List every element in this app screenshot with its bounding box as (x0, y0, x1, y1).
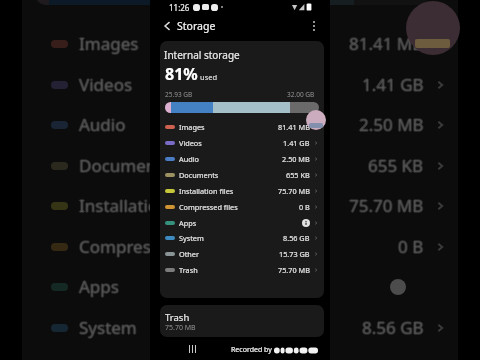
staticText: Installation files (79, 194, 206, 217)
staticText: Documents (79, 154, 171, 177)
staticText: Audio (79, 112, 126, 135)
button[interactable]: More options (307, 19, 321, 33)
staticText: 75.70 MB (278, 265, 310, 275)
staticText: 0 B (398, 235, 424, 258)
staticText: 15.73 GB (279, 249, 310, 259)
staticText: Documents (78, 154, 170, 177)
staticText: Documents (179, 170, 219, 180)
staticText: Compressed files (179, 202, 238, 212)
button[interactable]: System (160, 230, 324, 246)
staticText: Trash (165, 311, 190, 324)
button[interactable]: Back (159, 18, 174, 33)
staticText: Installation files (79, 195, 206, 218)
staticText: Images (79, 32, 139, 55)
staticText: Compressed files (79, 236, 216, 259)
staticText: Installation files (179, 186, 234, 196)
staticText: Trash (179, 265, 198, 275)
staticText: 11:26 (169, 2, 190, 13)
staticText: System (79, 315, 137, 338)
staticText: 81.41 MB (349, 31, 424, 54)
staticText: Images (79, 33, 139, 56)
staticText: 0 B (399, 235, 425, 258)
staticText: Installation files (79, 193, 206, 216)
staticText: System (179, 233, 204, 243)
staticText: 81.41 MB (350, 32, 425, 55)
staticText: 32.00 GB (287, 90, 315, 99)
staticText: 81% (165, 63, 198, 85)
staticText: 75.70 MB (165, 323, 196, 333)
staticText: 655 KB (368, 153, 424, 176)
staticText: Recorded by (231, 345, 272, 355)
staticText: 8.56 GB (283, 233, 310, 243)
button[interactable]: Trash (160, 262, 324, 278)
staticText: Videos (79, 73, 133, 96)
staticText: Audio (179, 154, 199, 164)
staticText: 1.41 GB (363, 73, 425, 96)
staticText: 1.41 GB (283, 138, 310, 148)
staticText: Apps (179, 218, 197, 228)
staticText: Images (78, 32, 138, 55)
staticText: 1.41 GB (362, 72, 424, 95)
staticText: 1.41 GB (362, 73, 424, 96)
staticText: Apps (80, 275, 120, 298)
staticText: 75.70 MB (349, 195, 424, 218)
button[interactable]: Documents (160, 167, 324, 183)
staticText: 25.93 GB (165, 90, 193, 99)
button[interactable]: Images (160, 119, 324, 135)
staticText: 2.50 MB (359, 112, 424, 135)
staticText: Compressed files (80, 235, 217, 258)
staticText: 75.70 MB (349, 194, 424, 217)
button[interactable]: Videos (160, 135, 324, 151)
button[interactable]: Audio (160, 151, 324, 167)
staticText: 2.50 MB (360, 113, 425, 136)
staticText: Videos (79, 74, 133, 97)
staticText: 655 KB (368, 154, 424, 177)
staticText: 81.41 MB (348, 32, 423, 55)
staticText: Compressed files (78, 235, 215, 258)
button[interactable]: Installation files (160, 183, 324, 199)
staticText: used (200, 72, 218, 82)
staticText: 75.70 MB (278, 186, 310, 196)
staticText: Videos (78, 73, 132, 96)
staticText: Installation files (78, 194, 205, 217)
button[interactable]: Apps (160, 215, 324, 231)
staticText: Audio (79, 114, 126, 137)
staticText: 2.50 MB (282, 154, 310, 164)
staticText: 0 B (398, 236, 424, 259)
staticText: Documents (79, 155, 171, 178)
staticText: Apps (79, 274, 119, 297)
staticText: 8.56 GB (362, 317, 424, 340)
staticText: 1.41 GB (362, 74, 424, 97)
staticText: Images (79, 31, 139, 54)
staticText: Audio (78, 113, 125, 136)
staticText: 1.41 GB (361, 73, 423, 96)
staticText: Audio (80, 113, 127, 136)
button[interactable]: Recent apps (189, 345, 196, 353)
button[interactable]: Compressed files (160, 199, 324, 215)
staticText: Compressed files (79, 235, 216, 258)
staticText: Documents (80, 154, 172, 177)
staticText: Apps (79, 276, 119, 299)
staticText: Other (179, 249, 199, 259)
staticText: 75.70 MB (348, 194, 423, 217)
button[interactable]: Trash (160, 305, 324, 337)
staticText: 81.41 MB (349, 32, 424, 55)
staticText: Apps (78, 275, 118, 298)
staticText: Audio (79, 113, 126, 136)
staticText: 75.70 MB (350, 194, 425, 217)
button[interactable]: Other (160, 246, 324, 262)
staticText: Images (80, 32, 140, 55)
staticText: 8.56 GB (362, 316, 424, 339)
staticText: 75.70 MB (349, 193, 424, 216)
staticText: Images (179, 122, 205, 132)
staticText: Apps (79, 275, 119, 298)
staticText: 2.50 MB (358, 113, 423, 136)
staticText: Storage (177, 19, 216, 33)
staticText: 655 KB (368, 155, 424, 178)
staticText: 2.50 MB (359, 113, 424, 136)
staticText: System (78, 316, 136, 339)
